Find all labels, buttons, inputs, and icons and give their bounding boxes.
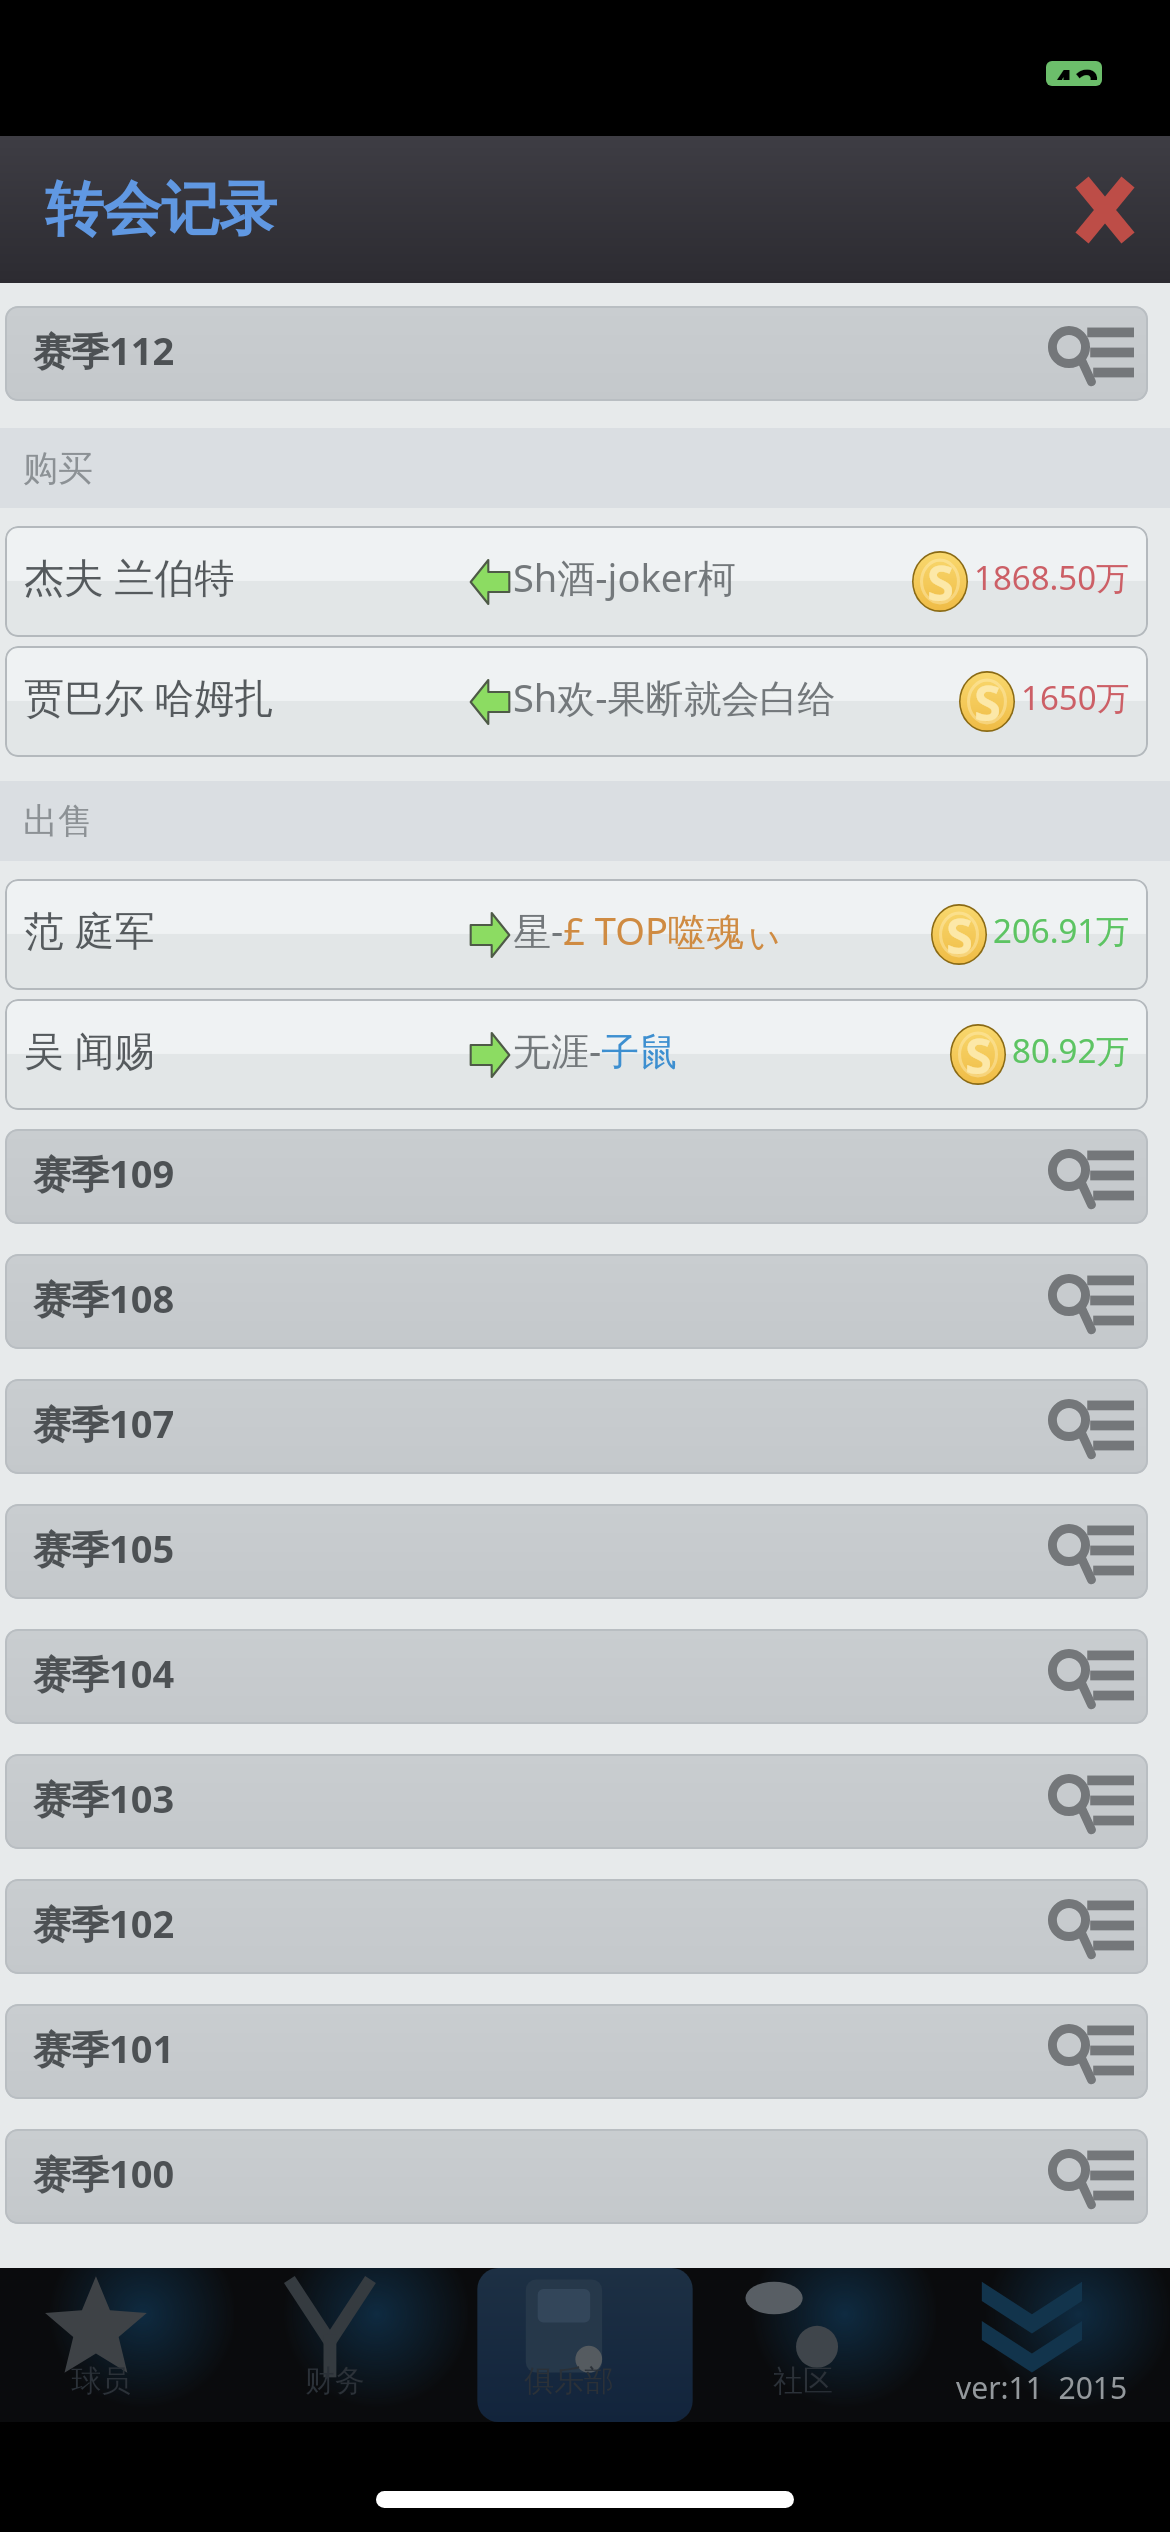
staticText: 杰夫 兰伯特 (24, 549, 235, 604)
button[interactable]: 赛季103 (5, 1754, 1148, 1849)
staticText: 赛季102 (33, 1897, 175, 1949)
staticText: 吴 闻赐 (24, 1022, 155, 1077)
staticText: S (946, 902, 973, 963)
button[interactable]: 赛季105 (5, 1504, 1148, 1599)
staticText: 206.91万 (993, 908, 1130, 953)
button[interactable]: 赛季109 (5, 1129, 1148, 1224)
staticText: 转会记录 (45, 173, 277, 246)
staticText: 社区 (773, 2362, 833, 2400)
button[interactable]: 杰夫 兰伯特 (5, 526, 1148, 637)
staticText: 赛季104 (33, 1647, 175, 1699)
staticText: 赛季108 (33, 1272, 175, 1324)
button[interactable]: 赛季100 (5, 2129, 1148, 2224)
staticText: 赛季100 (33, 2147, 175, 2199)
staticText: 出售 (23, 799, 93, 843)
staticText: Sh酒-joker柯 (513, 551, 736, 603)
staticText: 范 庭军 (24, 902, 155, 957)
staticText: 80.92万 (1012, 1028, 1130, 1073)
button[interactable]: Close (1055, 160, 1155, 260)
staticText: 赛季101 (33, 2022, 175, 2074)
button[interactable]: More (936, 2268, 1170, 2422)
staticText: ver:11 2015 (956, 2367, 1128, 2408)
button[interactable]: 赛季104 (5, 1629, 1148, 1724)
staticText: 赛季112 (33, 324, 175, 376)
button[interactable]: 赛季112 (5, 306, 1148, 401)
staticText: 赛季107 (33, 1397, 175, 1449)
staticText: 42 (1049, 61, 1100, 80)
button[interactable]: 贾巴尔 哈姆扎 (5, 646, 1148, 757)
button[interactable]: Messages (702, 2268, 936, 2422)
button[interactable]: 赛季107 (5, 1379, 1148, 1474)
staticText: 财务 (305, 2362, 365, 2400)
button[interactable]: 吴 闻赐 (5, 999, 1148, 1110)
staticText: 俱乐部 (524, 2362, 614, 2400)
button[interactable]: Favorites (0, 2268, 234, 2422)
button[interactable]: 赛季102 (5, 1879, 1148, 1974)
staticText: 赛季109 (33, 1147, 175, 1199)
staticText: 球员 (71, 2362, 131, 2400)
staticText: Sh欢-果断就会白给 (513, 671, 836, 723)
staticText: 无涯-子鼠 (513, 1024, 678, 1076)
button[interactable]: 赛季101 (5, 2004, 1148, 2099)
button[interactable]: Finance (234, 2268, 468, 2422)
staticText: 1868.50万 (974, 555, 1130, 600)
staticText: 赛季105 (33, 1522, 175, 1574)
staticText: S (927, 549, 954, 610)
staticText: S (965, 1022, 992, 1083)
staticText: 购买 (23, 446, 93, 490)
button[interactable]: Club (468, 2268, 702, 2422)
button[interactable]: 范 庭军 (5, 879, 1148, 990)
staticText: 赛季103 (33, 1772, 175, 1824)
staticText: S (974, 669, 1001, 730)
staticText: 星-£ TOP噬魂ぃ (513, 904, 783, 956)
staticText: 1650万 (1021, 675, 1130, 720)
button[interactable]: 赛季108 (5, 1254, 1148, 1349)
staticText: 贾巴尔 哈姆扎 (24, 669, 275, 724)
